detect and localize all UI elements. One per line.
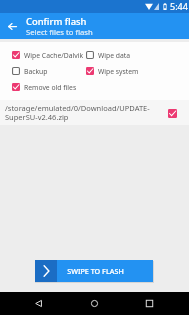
staticText: Wipe data	[98, 51, 131, 60]
button[interactable]: Home	[82, 292, 107, 315]
staticText: Wipe system	[98, 67, 139, 76]
button[interactable]: Remove old files	[12, 79, 77, 95]
button[interactable]: Recents	[137, 292, 162, 315]
staticText: SWIPE TO FLASH	[67, 266, 124, 276]
button[interactable]: Backup	[12, 63, 86, 79]
button[interactable]: SWIPE TO FLASH	[35, 260, 153, 282]
button[interactable]: /storage/emulated/0/Download/UPDATE-Supe…	[0, 100, 189, 125]
staticText: Wipe Cache/Dalvik	[24, 51, 84, 60]
staticText: 5:44	[170, 0, 188, 12]
button[interactable]: Wipe system	[86, 63, 139, 79]
staticText: Remove old files	[24, 83, 77, 92]
button[interactable]: Back	[0, 13, 25, 39]
button[interactable]: Wipe data	[86, 47, 131, 63]
staticText: Select files to flash	[26, 27, 93, 37]
button[interactable]: Back	[26, 292, 51, 315]
staticText: Confirm flash	[26, 15, 87, 28]
staticText: Backup	[24, 67, 48, 76]
staticText: /storage/emulated/0/Download/UPDATE-Supe…	[5, 103, 164, 122]
button[interactable]: Wipe Cache/Dalvik	[12, 47, 86, 63]
